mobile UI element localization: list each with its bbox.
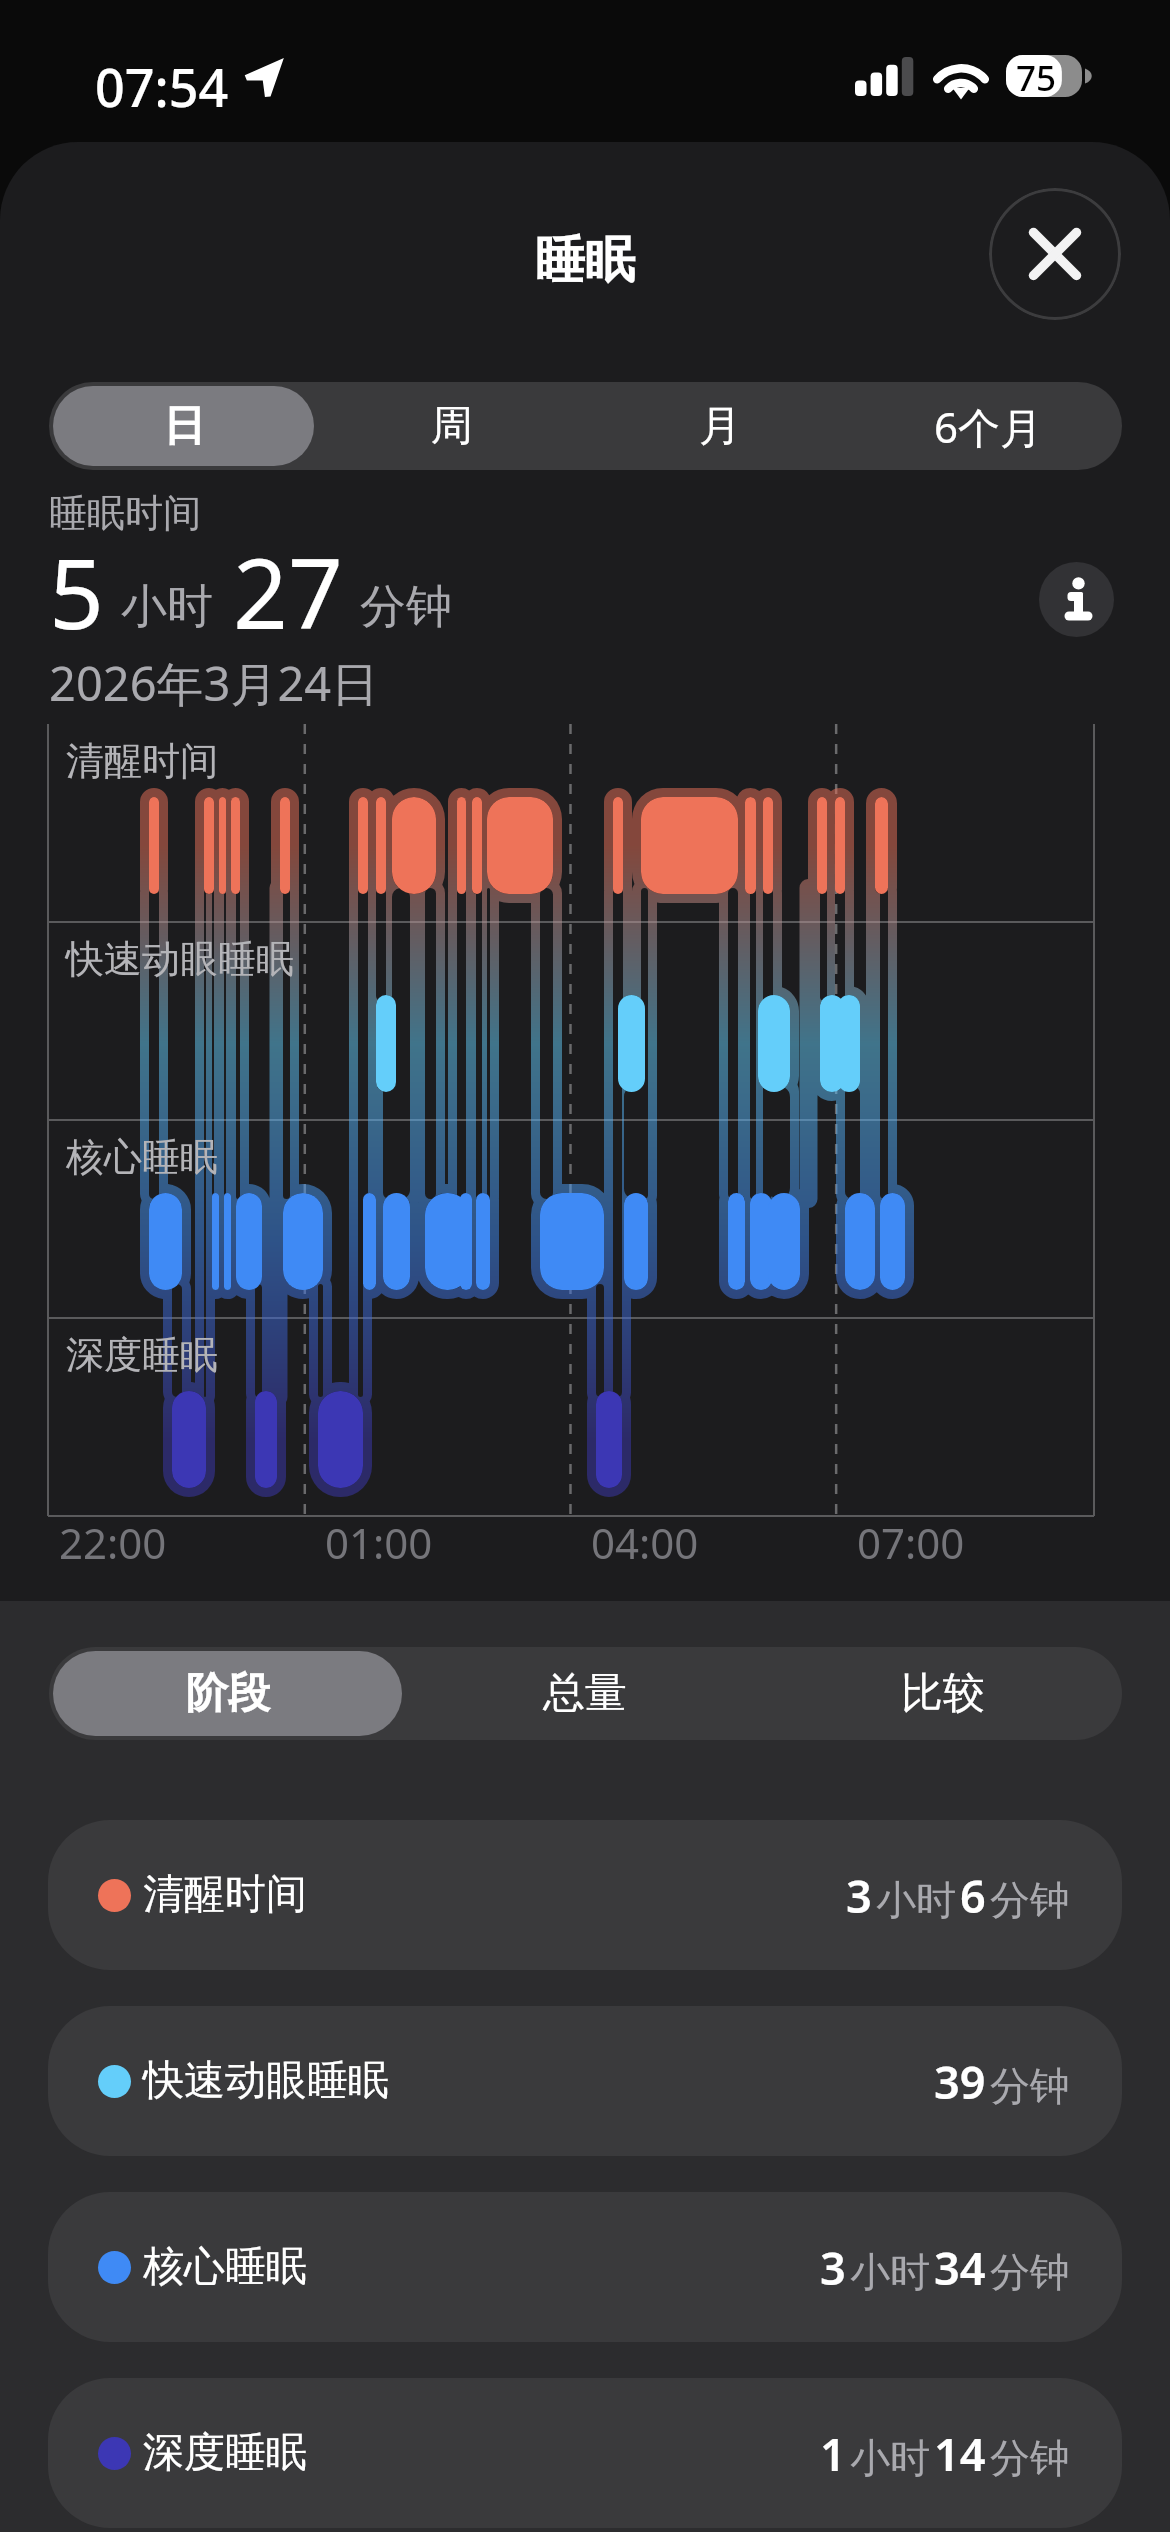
staticText: 分钟 (990, 2247, 1070, 2297)
staticText: 小时 (121, 578, 213, 636)
staticText: 阶段 (186, 1667, 270, 1720)
button[interactable]: 核心睡眠 (48, 2192, 1122, 2342)
staticText: 5 (49, 526, 104, 657)
staticText: 07:54 (95, 51, 229, 122)
staticText: 月 (699, 400, 741, 453)
staticText: 睡眠 (535, 229, 635, 292)
staticText: 清醒时间 (66, 737, 218, 785)
staticText: 清醒时间 (143, 1869, 307, 1921)
button[interactable]: 总量 (410, 1651, 760, 1736)
staticText: 1 (820, 2423, 846, 2484)
staticText: 快速动眼睡眠 (66, 935, 294, 983)
button[interactable]: 清醒时间 (48, 1820, 1122, 1970)
staticText: 2026年3月24日 (49, 651, 379, 715)
staticText: 14 (934, 2423, 986, 2484)
staticText: 6 (960, 1865, 986, 1926)
staticText: 核心睡眠 (143, 2241, 307, 2293)
staticText: 深度睡眠 (66, 1331, 218, 1379)
button[interactable]: 比较 (768, 1651, 1118, 1736)
staticText: 周 (431, 400, 473, 453)
staticText: 睡眠时间 (49, 489, 201, 537)
staticText: 深度睡眠 (143, 2427, 307, 2479)
staticText: 04:00 (591, 1514, 699, 1571)
button[interactable]: 月 (590, 386, 850, 466)
staticText: 比较 (901, 1667, 985, 1720)
staticText: 分钟 (360, 578, 452, 636)
staticText: 3 (820, 2237, 846, 2298)
button[interactable]: 6个月 (858, 386, 1118, 466)
staticText: 小时 (850, 2433, 930, 2483)
button[interactable]: 信息 (1039, 562, 1114, 637)
button[interactable]: 快速动眼睡眠 (48, 2006, 1122, 2156)
button[interactable]: 日 (53, 386, 314, 466)
staticText: 日 (163, 400, 205, 453)
staticText: 小时 (876, 1875, 956, 1925)
staticText: 3 (846, 1865, 872, 1926)
staticText: 07:00 (857, 1514, 965, 1571)
staticText: 分钟 (990, 2433, 1070, 2483)
button[interactable]: 深度睡眠 (48, 2378, 1122, 2528)
button[interactable]: 关闭 (989, 188, 1121, 320)
staticText: 快速动眼睡眠 (143, 2055, 389, 2107)
staticText: 22:00 (59, 1514, 167, 1571)
staticText: 01:00 (325, 1514, 433, 1571)
staticText: 小时 (850, 2247, 930, 2297)
staticText: 6个月 (934, 398, 1043, 455)
staticText: 总量 (543, 1667, 627, 1720)
staticText: 75 (1016, 54, 1057, 96)
staticText: 39 (934, 2051, 986, 2112)
staticText: 分钟 (990, 1875, 1070, 1925)
staticText: 分钟 (990, 2061, 1070, 2111)
staticText: 34 (934, 2237, 986, 2298)
staticText: 27 (233, 526, 343, 657)
button[interactable]: 阶段 (53, 1651, 402, 1736)
staticText: 核心睡眠 (66, 1133, 218, 1181)
button[interactable]: 周 (322, 386, 582, 466)
